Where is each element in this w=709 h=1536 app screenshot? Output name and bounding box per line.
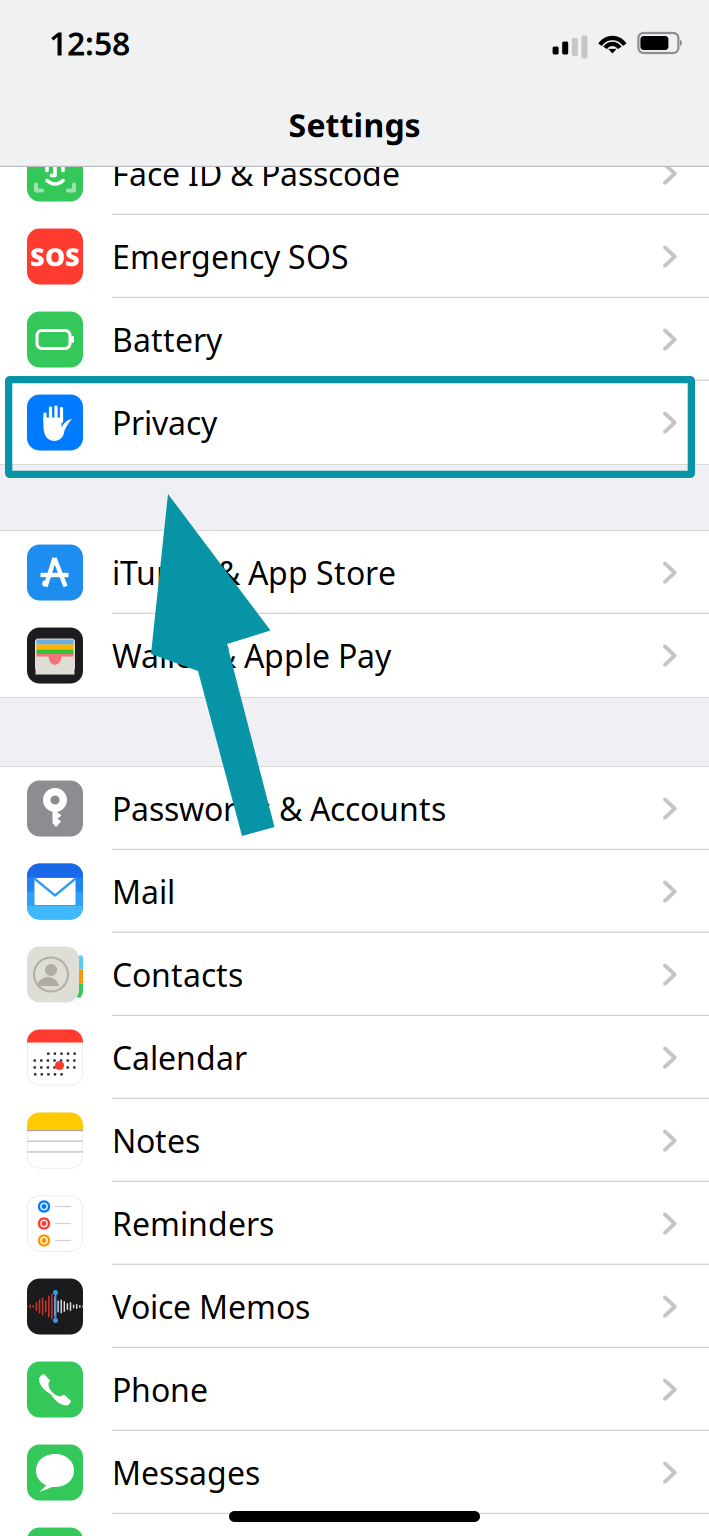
staticText: Battery <box>112 318 222 361</box>
button[interactable]: Calendar <box>0 1016 709 1099</box>
staticText: Mail <box>112 870 175 913</box>
button[interactable]: Messages <box>0 1431 709 1514</box>
staticText: SOS <box>30 240 80 273</box>
button[interactable]: SOS <box>0 215 709 298</box>
staticText: Passwords & Accounts <box>112 787 446 830</box>
button[interactable]: Privacy <box>0 381 709 464</box>
button[interactable]: Contacts <box>0 933 709 1016</box>
button[interactable]: Reminders <box>0 1182 709 1265</box>
staticText: Phone <box>112 1368 208 1411</box>
staticText: Face ID & Passcode <box>112 152 400 195</box>
staticText: Voice Memos <box>112 1285 310 1328</box>
button[interactable]: iTunes & App Store <box>0 531 709 614</box>
button[interactable]: Battery <box>0 298 709 381</box>
staticText: Messages <box>112 1451 260 1494</box>
staticText: Settings <box>288 103 420 146</box>
staticText: Calendar <box>112 1036 247 1079</box>
button[interactable]: Voice Memos <box>0 1265 709 1348</box>
staticText: Notes <box>112 1119 200 1162</box>
button[interactable]: Wallet & Apple Pay <box>0 614 709 697</box>
button[interactable]: Face ID & Passcode <box>0 132 709 215</box>
button[interactable]: Find My <box>0 1514 709 1536</box>
staticText: Emergency SOS <box>112 235 349 278</box>
staticText: Contacts <box>112 953 243 996</box>
button[interactable]: Mail <box>0 850 709 933</box>
staticText: 12:58 <box>49 22 130 64</box>
button[interactable]: Passwords & Accounts <box>0 767 709 850</box>
staticText: Privacy <box>112 401 217 444</box>
button[interactable]: Phone <box>0 1348 709 1431</box>
staticText: Reminders <box>112 1202 274 1245</box>
button[interactable]: Notes <box>0 1099 709 1182</box>
staticText: iTunes & App Store <box>112 551 396 594</box>
staticText: Wallet & Apple Pay <box>112 634 391 677</box>
